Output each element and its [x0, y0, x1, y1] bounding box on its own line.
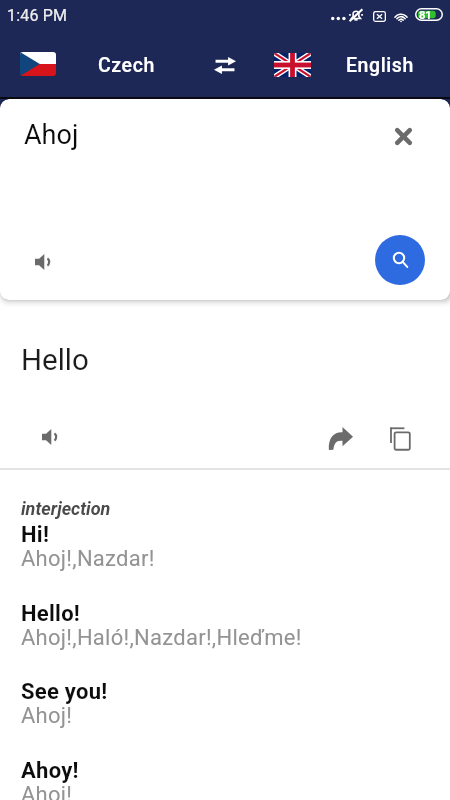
button[interactable]: See you! [21, 679, 450, 731]
staticText: Hello [21, 343, 89, 378]
staticText: 81 [419, 9, 432, 22]
staticText: Ahoj! [21, 703, 73, 729]
button[interactable]: Share [320, 418, 360, 458]
button[interactable]: Hi! [21, 522, 450, 574]
staticText: Ahoj!,Haló!,Nazdar!,Hleďme! [21, 625, 302, 651]
staticText: Ahoj!,Nazdar! [21, 546, 155, 572]
button[interactable]: Ahoy! [21, 758, 450, 800]
button[interactable]: English [346, 54, 414, 77]
staticText: interjection [21, 498, 111, 519]
button[interactable]: Search [375, 235, 425, 285]
button[interactable]: Copy [380, 418, 420, 458]
staticText: Ahoj! [21, 782, 73, 800]
button[interactable]: Clear [385, 118, 421, 154]
staticText: Hello! [21, 601, 81, 627]
button[interactable]: Czech [98, 54, 155, 77]
button[interactable]: Speak translation [29, 417, 69, 457]
staticText: 1:46 PM [7, 6, 68, 25]
staticText: Ahoy! [21, 758, 79, 784]
button[interactable]: Swap languages [203, 43, 247, 87]
staticText: Hi! [21, 522, 50, 548]
staticText: Ahoj [24, 119, 79, 151]
button[interactable]: Speak source text [22, 242, 62, 282]
button[interactable]: Target language English [274, 53, 311, 77]
button[interactable]: Source language Czech [20, 52, 56, 76]
button[interactable]: Ahoj [0, 99, 450, 300]
button[interactable]: Hello! [21, 601, 450, 653]
staticText: See you! [21, 679, 108, 705]
